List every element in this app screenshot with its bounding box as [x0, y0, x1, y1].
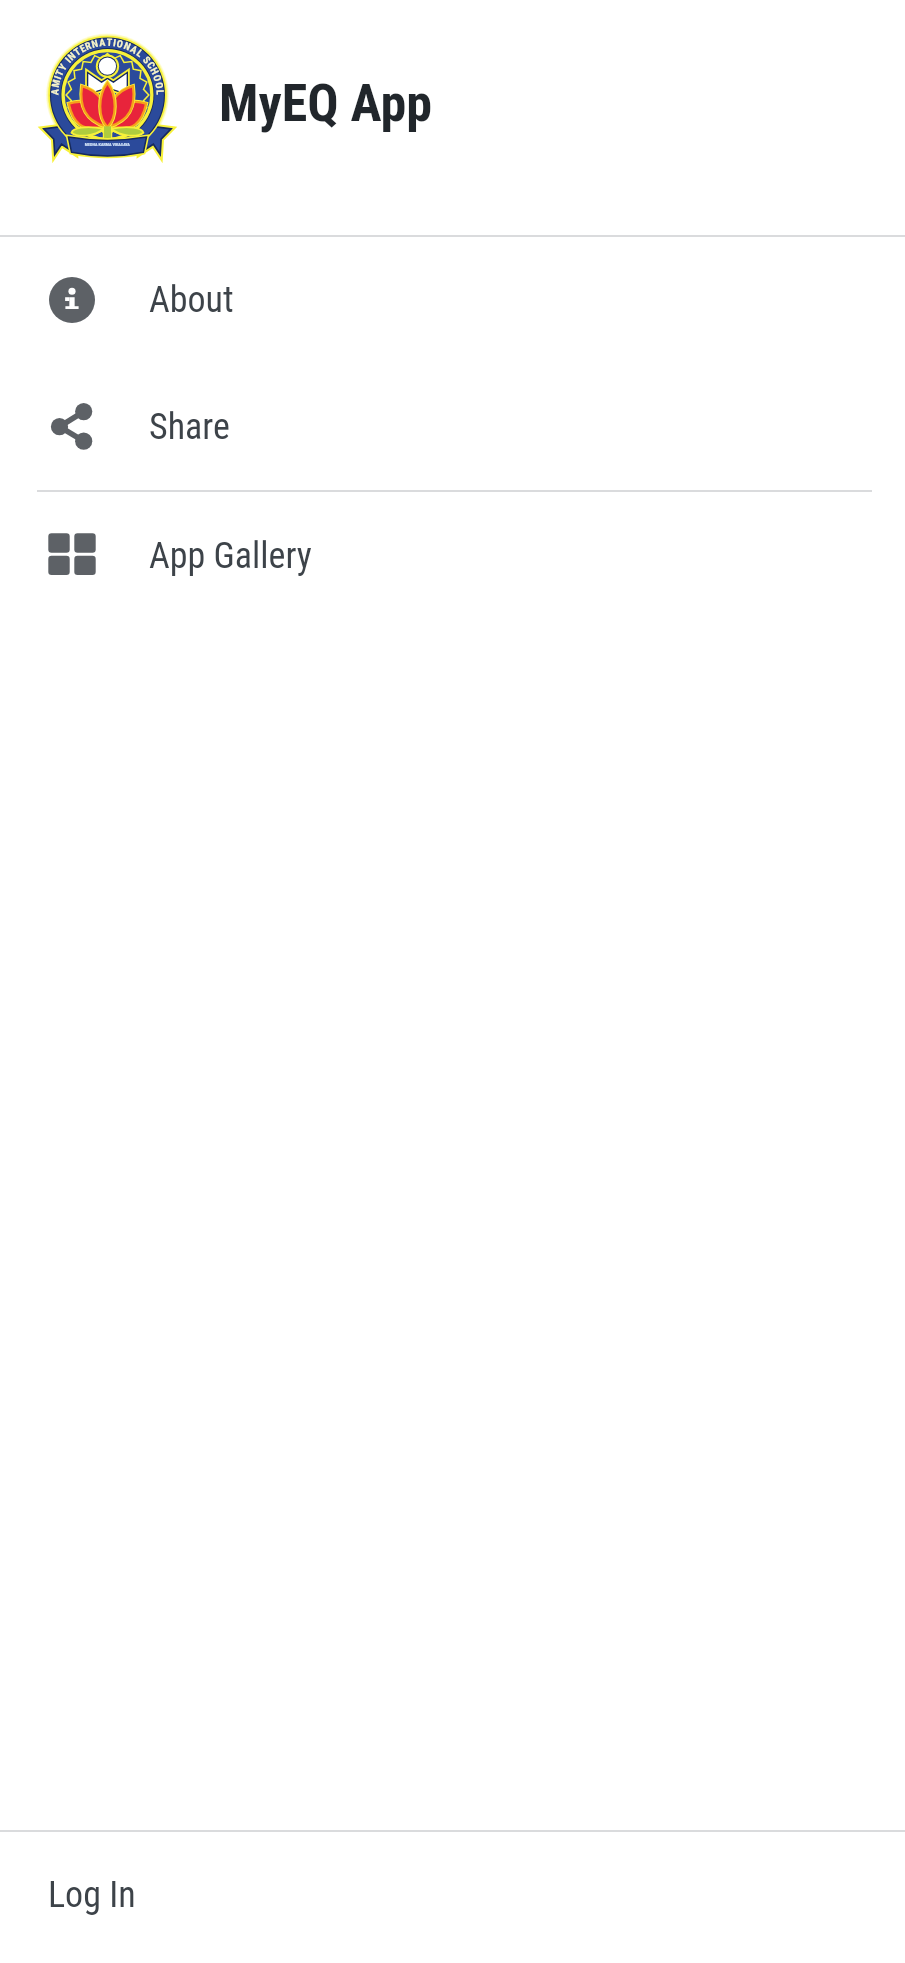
button[interactable]: About: [0, 237, 905, 363]
staticText: MyEQ App: [219, 73, 432, 134]
button[interactable]: Share: [0, 363, 905, 490]
staticText: About: [149, 279, 234, 321]
staticText: Log In: [48, 1874, 136, 1916]
button[interactable]: Log In: [0, 1832, 905, 1963]
staticText: App Gallery: [149, 535, 312, 577]
other: Amity International School logo: [38, 33, 175, 161]
staticText: Share: [149, 406, 230, 448]
button[interactable]: App Gallery: [0, 492, 905, 619]
